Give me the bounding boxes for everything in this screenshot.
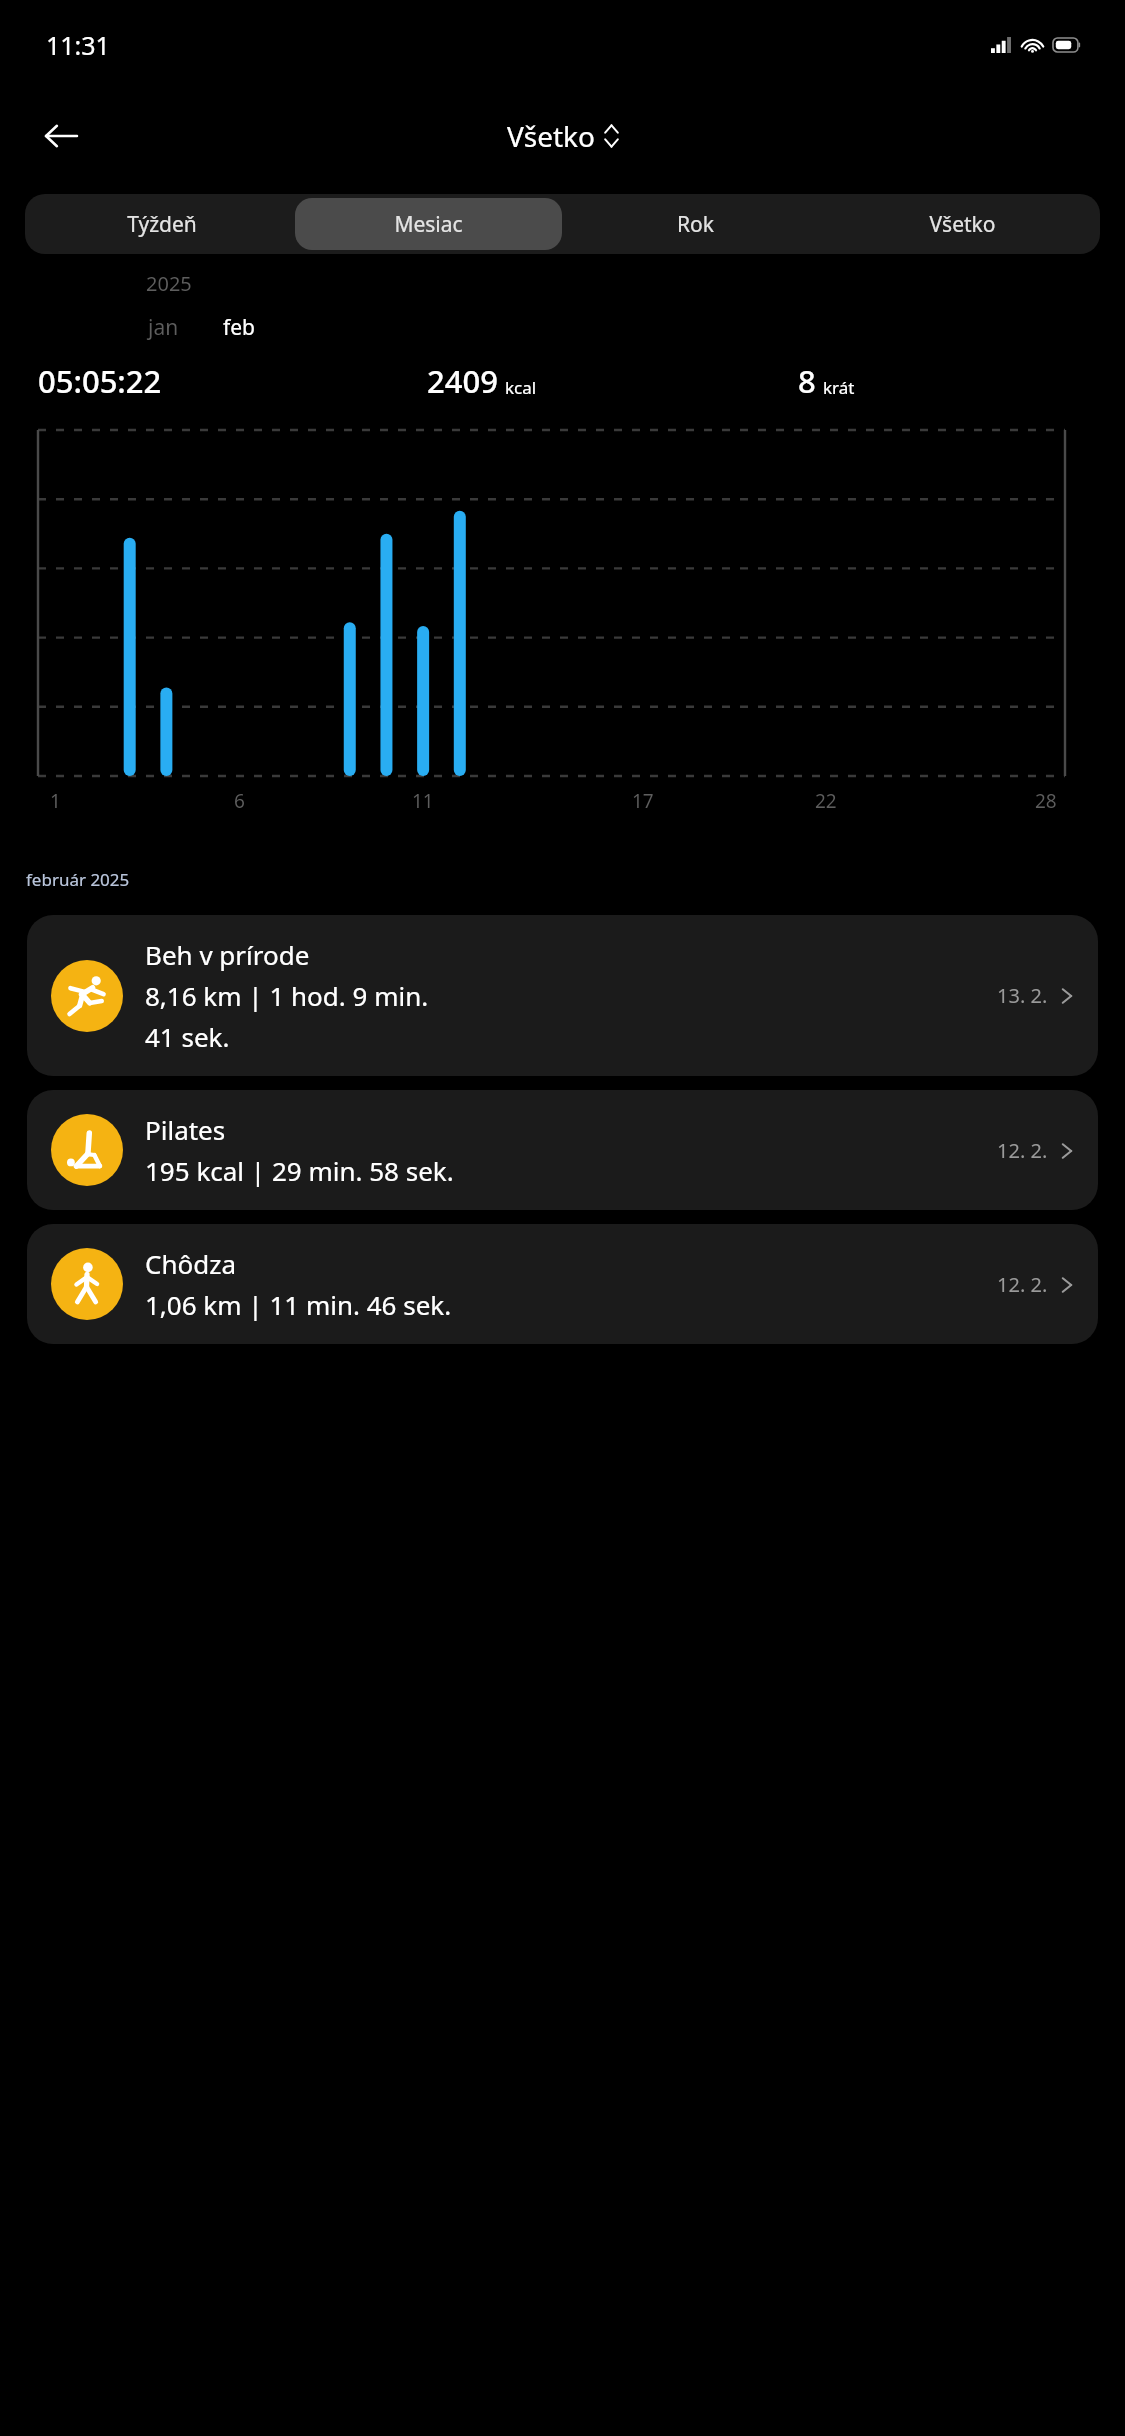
button[interactable]: Beh v prírode (27, 915, 1098, 1076)
staticText: kcal (505, 376, 537, 399)
staticText: Týždeň (127, 210, 197, 239)
staticText: 8,16 km | 1 hod. 9 min. (145, 978, 429, 1013)
staticText: 6 (234, 788, 245, 814)
staticText: 41 sek. (145, 1019, 230, 1054)
staticText: 17 (632, 788, 654, 814)
staticText: Všetko (507, 117, 596, 155)
staticText: 8 (798, 360, 816, 402)
staticText: Všetko (929, 210, 996, 239)
button[interactable]: Back (30, 105, 92, 167)
button[interactable]: Všetko (501, 111, 625, 161)
staticText: 195 kcal | 29 min. 58 sek. (145, 1153, 454, 1188)
staticText: 1,06 km | 11 min. 46 sek. (145, 1287, 452, 1322)
button[interactable]: Mesiac (295, 198, 562, 250)
staticText: 05:05:22 (38, 360, 162, 402)
staticText: 11 (412, 788, 434, 814)
staticText: 28 (1035, 788, 1057, 814)
staticText: Rok (677, 210, 714, 239)
staticText: Chôdza (145, 1246, 237, 1281)
staticText: 2025 (146, 270, 192, 297)
staticText: feb (223, 313, 255, 342)
staticText: 13. 2. (997, 982, 1048, 1009)
staticText: 12. 2. (997, 1137, 1048, 1164)
staticText: 12. 2. (997, 1271, 1048, 1298)
staticText: Mesiac (394, 210, 463, 239)
button[interactable]: feb (223, 313, 255, 342)
staticText: Beh v prírode (145, 937, 310, 972)
button[interactable]: jan (148, 313, 179, 342)
button[interactable]: Rok (562, 198, 829, 250)
staticText: 22 (815, 788, 837, 814)
staticText: jan (148, 313, 179, 342)
staticText: krát (823, 376, 855, 399)
button[interactable]: Pilates (27, 1090, 1098, 1210)
button[interactable]: Týždeň (29, 198, 295, 250)
button[interactable]: Chôdza (27, 1224, 1098, 1344)
button[interactable]: Všetko (829, 198, 1096, 250)
staticText: 11:31 (46, 28, 110, 62)
staticText: február 2025 (26, 868, 130, 891)
staticText: 2409 (427, 360, 498, 402)
staticText: 1 (50, 788, 61, 814)
staticText: Pilates (145, 1112, 226, 1147)
